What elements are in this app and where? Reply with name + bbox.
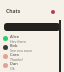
staticText: Hey there bbox=[10, 39, 26, 43]
button[interactable]: Cara bbox=[0, 52, 64, 61]
staticText: Cara bbox=[10, 52, 19, 57]
button[interactable]: Profile bbox=[51, 10, 55, 14]
staticText: Bob bbox=[10, 43, 18, 48]
staticText: Thanks! bbox=[10, 57, 23, 61]
button[interactable]: Bob bbox=[0, 43, 64, 52]
staticText: Chats bbox=[6, 8, 21, 15]
staticText: Alice bbox=[10, 34, 20, 39]
button[interactable]: Alice bbox=[0, 34, 64, 43]
staticText: See you soon bbox=[10, 48, 32, 52]
staticText: Ok bbox=[10, 66, 15, 70]
button[interactable] bbox=[4, 23, 60, 31]
staticText: Dan bbox=[10, 61, 18, 66]
button[interactable]: Dan bbox=[0, 61, 64, 70]
